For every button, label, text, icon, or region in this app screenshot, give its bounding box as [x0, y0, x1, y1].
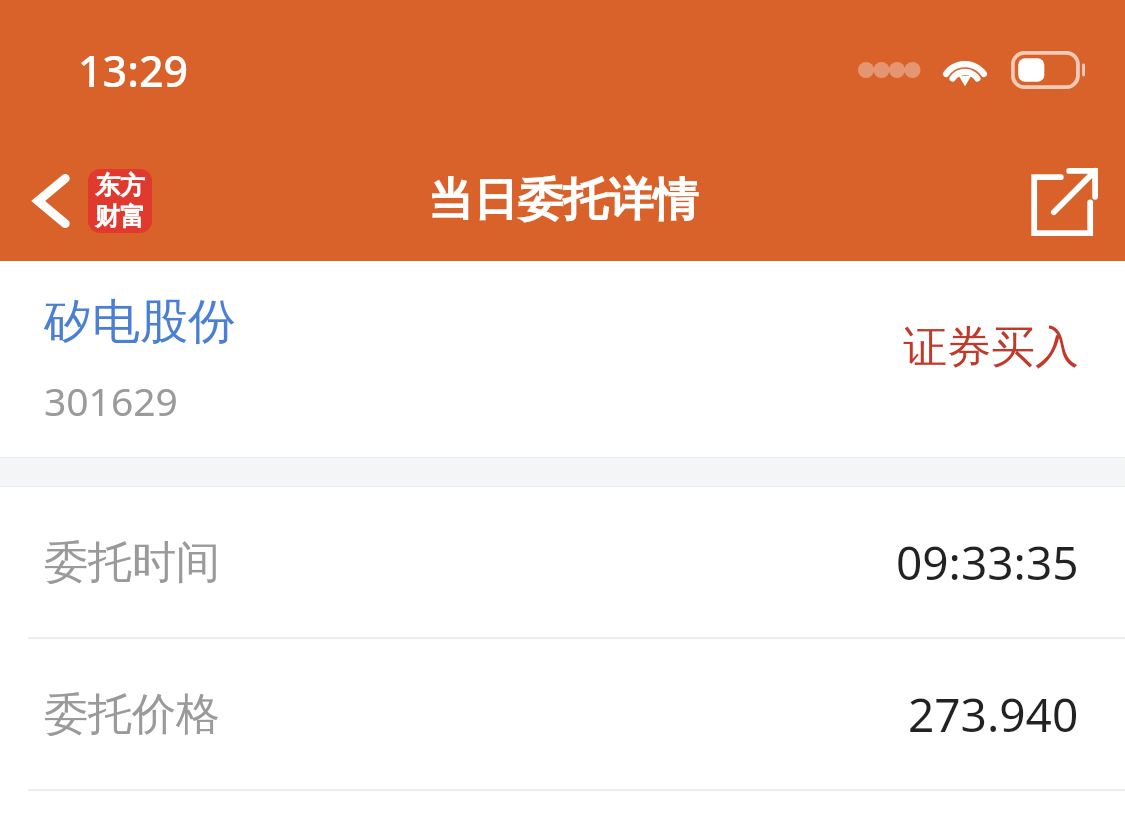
staticText: 301629	[44, 374, 178, 427]
staticText: 矽电股份	[44, 292, 236, 352]
staticText: 09:33:35	[896, 531, 1079, 594]
staticText: 财富	[95, 201, 145, 232]
staticText: 委托时间	[44, 535, 220, 590]
button[interactable]: 委托价格	[0, 639, 1125, 789]
staticText: 当日委托详情	[428, 172, 698, 229]
staticText: 13:29	[78, 41, 189, 100]
button[interactable]: Share	[1005, 140, 1125, 261]
button[interactable]: 委托时间	[0, 487, 1125, 637]
button[interactable]: 矽电股份	[0, 261, 1125, 457]
staticText: 东方	[95, 170, 145, 201]
staticText: 委托价格	[44, 687, 220, 742]
button[interactable]: Back	[0, 140, 170, 261]
staticText: 证券买入	[903, 320, 1079, 375]
staticText: 273.940	[908, 683, 1079, 746]
